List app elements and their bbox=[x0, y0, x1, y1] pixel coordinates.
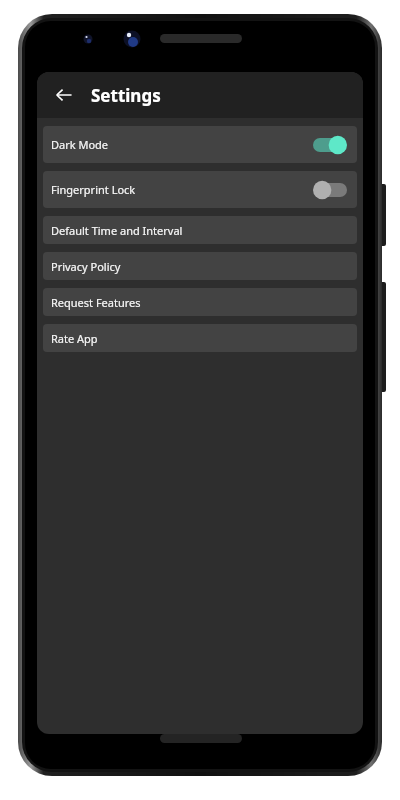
button[interactable]: Rate App bbox=[43, 324, 357, 352]
staticText: Dark Mode bbox=[51, 137, 109, 152]
button[interactable]: Toggle on bbox=[313, 135, 347, 155]
staticText: Default Time and Interval bbox=[51, 223, 183, 238]
button[interactable]: Toggle off bbox=[313, 180, 347, 200]
button[interactable]: Default Time and Interval bbox=[43, 216, 357, 244]
button[interactable]: Request Features bbox=[43, 288, 357, 316]
staticText: Settings bbox=[91, 84, 161, 107]
button[interactable]: Back bbox=[47, 78, 81, 112]
staticText: Rate App bbox=[51, 331, 98, 346]
staticText: Privacy Policy bbox=[51, 259, 121, 274]
button[interactable]: Dark Mode bbox=[43, 126, 357, 163]
staticText: Request Features bbox=[51, 295, 141, 310]
button[interactable]: Fingerprint Lock bbox=[43, 171, 357, 208]
staticText: Fingerprint Lock bbox=[51, 182, 136, 197]
button[interactable]: Privacy Policy bbox=[43, 252, 357, 280]
